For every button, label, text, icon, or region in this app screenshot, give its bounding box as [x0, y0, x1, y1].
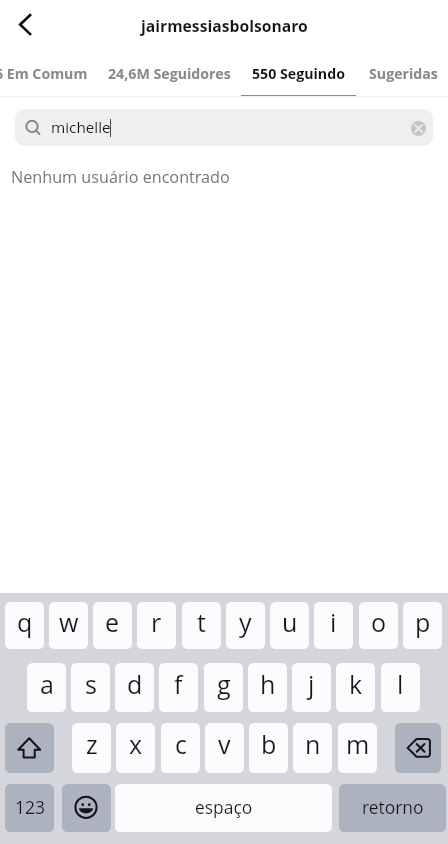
button[interactable]: d — [115, 663, 154, 712]
staticText: m — [346, 727, 370, 761]
staticText: x — [129, 727, 143, 761]
button[interactable]: michelle — [15, 109, 433, 146]
button[interactable]: h — [248, 663, 287, 712]
button[interactable]: Clear text — [406, 116, 430, 140]
button[interactable]: s — [71, 663, 110, 712]
button[interactable]: l — [381, 663, 420, 712]
button[interactable]: Back — [2, 3, 48, 49]
button[interactable]: Emoji — [62, 784, 111, 832]
staticText: j — [308, 667, 315, 701]
button[interactable]: j — [292, 663, 331, 712]
button[interactable]: f — [159, 663, 198, 712]
staticText: v — [218, 727, 231, 761]
staticText: f — [174, 667, 183, 701]
button[interactable]: 6 Em Comum — [0, 52, 96, 96]
staticText: i — [330, 605, 337, 639]
button[interactable]: n — [293, 723, 332, 773]
button[interactable]: t — [182, 602, 221, 649]
staticText: b — [261, 727, 277, 761]
button[interactable]: v — [205, 723, 244, 773]
button[interactable]: espaço — [115, 784, 332, 832]
button[interactable]: c — [161, 723, 200, 773]
staticText: 24,6M Seguidores — [108, 64, 231, 83]
staticText: a — [40, 667, 54, 701]
staticText: w — [59, 605, 79, 639]
staticText: o — [371, 605, 387, 639]
staticText: 550 Seguindo — [252, 64, 345, 83]
staticText: retorno — [362, 795, 424, 819]
button[interactable]: 24,6M Seguidores — [98, 52, 241, 96]
button[interactable]: a — [27, 663, 66, 712]
button[interactable]: m — [338, 723, 377, 773]
staticText: k — [349, 667, 363, 701]
staticText: d — [127, 667, 143, 701]
button[interactable]: e — [93, 602, 132, 649]
staticText: s — [85, 667, 97, 701]
button[interactable]: o — [359, 602, 398, 649]
button[interactable]: q — [5, 602, 44, 649]
staticText: n — [305, 727, 321, 761]
staticText: u — [282, 605, 298, 639]
button[interactable]: u — [270, 602, 309, 649]
staticText: p — [415, 605, 431, 639]
button[interactable]: 123 — [5, 784, 54, 832]
button[interactable]: x — [116, 723, 155, 773]
staticText: Nenhum usuário encontrado — [11, 166, 230, 188]
button[interactable]: k — [336, 663, 375, 712]
staticText: r — [151, 605, 162, 639]
button[interactable]: g — [204, 663, 243, 712]
button[interactable]: Backspace — [395, 723, 441, 773]
button[interactable]: y — [226, 602, 265, 649]
button[interactable]: z — [72, 723, 111, 773]
staticText: c — [175, 727, 187, 761]
staticText: michelle — [51, 117, 111, 138]
staticText: l — [397, 667, 404, 701]
staticText: Sugeridas — [369, 64, 438, 83]
button[interactable]: b — [249, 723, 288, 773]
staticText: y — [239, 605, 252, 639]
staticText: z — [86, 727, 98, 761]
button[interactable]: retorno — [339, 784, 446, 832]
button[interactable]: w — [49, 602, 88, 649]
button[interactable]: r — [137, 602, 176, 649]
staticText: 6 Em Comum — [0, 64, 88, 83]
staticText: g — [217, 667, 231, 701]
staticText: 123 — [15, 795, 45, 819]
staticText: q — [17, 605, 33, 639]
button[interactable]: i — [314, 602, 353, 649]
button[interactable]: p — [403, 602, 442, 649]
staticText: jairmessiasbolsonaro — [141, 15, 308, 36]
staticText: espaço — [195, 795, 253, 819]
button[interactable]: 550 Seguindo — [240, 52, 357, 96]
staticText: e — [105, 605, 120, 639]
button[interactable]: Shift — [5, 723, 54, 773]
button[interactable]: Sugeridas — [359, 52, 448, 96]
staticText: t — [197, 605, 206, 639]
staticText: h — [260, 667, 276, 701]
